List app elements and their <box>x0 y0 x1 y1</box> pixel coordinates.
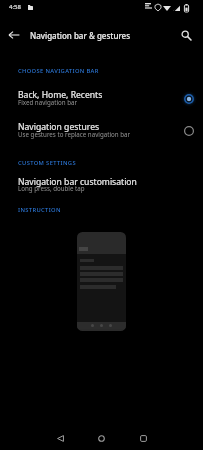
staticText: Fixed navigation bar <box>18 98 78 106</box>
staticText: Long press, double tap <box>18 184 85 192</box>
staticText: Back, Home, Recents <box>18 89 103 101</box>
staticText: 4:58 <box>9 3 21 11</box>
staticText: CUSTOM SETTINGS <box>18 159 76 167</box>
button[interactable]: Home <box>89 426 113 450</box>
button[interactable]: Back <box>0 21 28 49</box>
staticText: Navigation bar customisation <box>18 176 137 188</box>
staticText: Navigation bar & gestures <box>30 30 131 41</box>
button[interactable]: Navigation gestures <box>0 118 203 144</box>
button[interactable]: Recents <box>131 426 155 450</box>
staticText: Use gestures to replace navigation bar <box>18 130 130 138</box>
button[interactable]: Search <box>172 21 200 49</box>
button[interactable]: Back, Home, Recents <box>0 86 203 112</box>
staticText: CHOOSE NAVIGATION BAR <box>18 67 99 75</box>
button[interactable]: Back <box>48 426 72 450</box>
button[interactable]: Navigation bar customisation <box>0 173 203 199</box>
staticText: Navigation gestures <box>18 121 100 133</box>
staticText: INSTRUCTION <box>18 206 61 214</box>
